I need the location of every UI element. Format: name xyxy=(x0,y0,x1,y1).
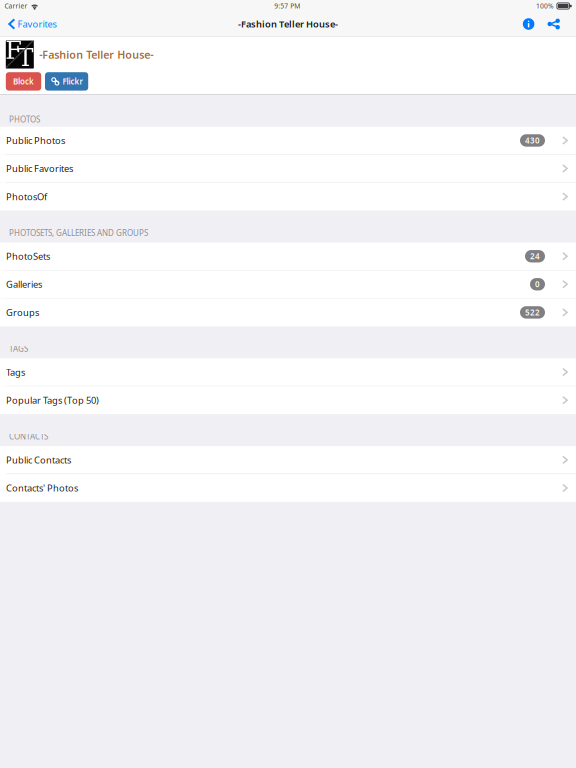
staticText: 430 xyxy=(525,135,540,146)
button[interactable]: Block xyxy=(6,72,41,91)
staticText: F xyxy=(5,36,22,64)
staticText: 100% xyxy=(536,2,554,10)
button[interactable]: Favorites xyxy=(0,12,63,36)
staticText: -Fashion Teller House- xyxy=(238,18,338,30)
staticText: Public Photos xyxy=(6,134,65,147)
staticText: Galleries xyxy=(6,278,42,290)
button[interactable]: Share xyxy=(542,12,565,36)
staticText: Popular Tags (Top 50) xyxy=(6,394,99,406)
button[interactable]: Public Favorites xyxy=(0,155,576,183)
staticText: PHOTOS xyxy=(9,114,40,125)
staticText: T xyxy=(18,44,34,72)
button[interactable]: Public Contacts xyxy=(0,446,576,474)
staticText: PhotoSets xyxy=(6,250,50,262)
button[interactable]: Public Photos xyxy=(0,127,576,155)
staticText: CONTACTS xyxy=(9,431,48,442)
staticText: PhotosOf xyxy=(6,190,47,203)
staticText: TAGS xyxy=(9,343,28,354)
staticText: Contacts' Photos xyxy=(6,482,78,494)
button[interactable]: Info xyxy=(518,12,539,36)
staticText: 24 xyxy=(530,251,540,261)
button[interactable]: PhotoSets xyxy=(0,242,576,270)
staticText: Public Favorites xyxy=(6,162,73,175)
staticText: 9:57 PM xyxy=(274,2,300,10)
staticText: Favorites xyxy=(18,18,57,30)
button[interactable]: Flickr xyxy=(45,72,88,91)
button[interactable]: Tags xyxy=(0,358,576,386)
staticText: PHOTOSETS, GALLERIES AND GROUPS xyxy=(9,227,148,238)
button[interactable]: Contacts' Photos xyxy=(0,474,576,502)
staticText: 522 xyxy=(525,307,540,318)
button[interactable]: Popular Tags (Top 50) xyxy=(0,386,576,414)
staticText: Block xyxy=(13,76,34,87)
staticText: Public Contacts xyxy=(6,454,71,466)
staticText: Groups xyxy=(6,306,39,319)
button[interactable]: PhotosOf xyxy=(0,183,576,210)
staticText: -Fashion Teller House- xyxy=(39,47,153,62)
staticText: Tags xyxy=(6,366,25,378)
button[interactable]: Groups xyxy=(0,298,576,326)
staticText: Flickr xyxy=(63,76,83,87)
button[interactable]: Galleries xyxy=(0,270,576,298)
staticText: Carrier xyxy=(4,2,27,10)
staticText: 0 xyxy=(535,279,540,289)
